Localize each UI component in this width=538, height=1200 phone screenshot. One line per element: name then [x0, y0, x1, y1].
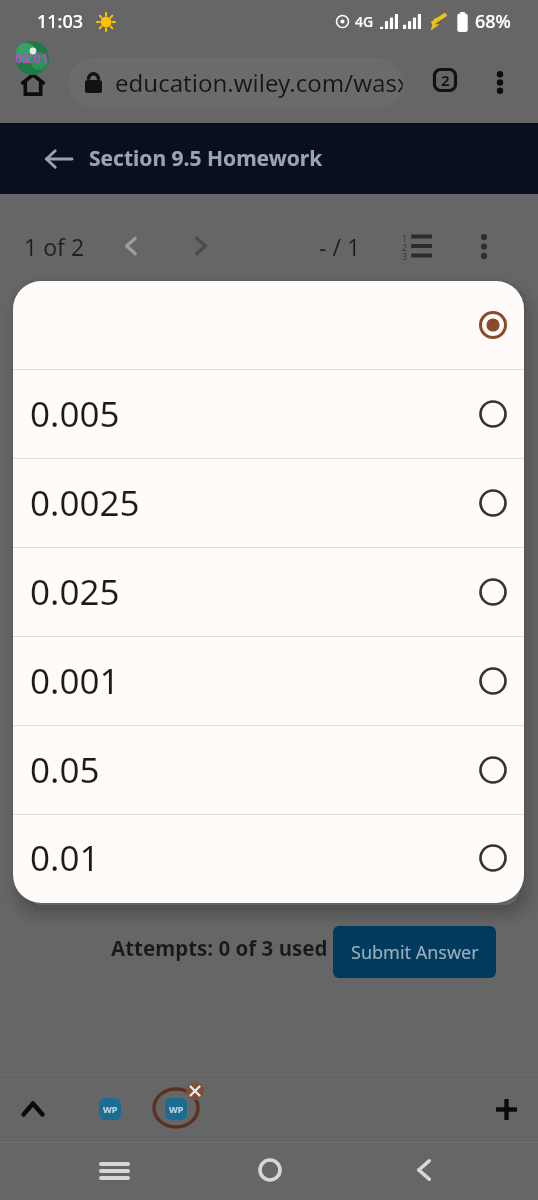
staticText: Attempts: 0 of 3 used [111, 934, 328, 962]
staticText: 0.005 [30, 390, 120, 438]
button[interactable]: Tabs [427, 62, 463, 98]
staticText: 0.05 [30, 746, 100, 794]
staticText: - / 1 [319, 231, 361, 262]
button[interactable]: Previous [109, 224, 153, 268]
staticText: 02:01 [15, 49, 49, 67]
button[interactable]: Next [179, 224, 223, 268]
staticText: education.wiley.com/wasx [115, 66, 403, 99]
staticText: Submit Answer [351, 940, 479, 965]
button[interactable]: Close tab [186, 1082, 204, 1100]
button[interactable]: Home [18, 72, 48, 102]
button[interactable] [13, 281, 524, 369]
button[interactable]: More options [480, 62, 520, 102]
button[interactable]: Back [44, 145, 72, 173]
button[interactable]: WileyPLUS tab [99, 1098, 121, 1120]
button[interactable]: 0.0025 [13, 459, 524, 547]
staticText: 0.01 [30, 834, 100, 882]
button[interactable]: More [464, 226, 504, 266]
staticText: 0.0025 [30, 479, 140, 527]
staticText: 68% [475, 9, 511, 34]
button[interactable]: Active tab [165, 1098, 187, 1120]
button[interactable]: 0.025 [13, 548, 524, 636]
button[interactable]: 0.001 [13, 637, 524, 725]
button[interactable]: Expand toolbar [10, 1086, 55, 1131]
staticText: 0.001 [30, 657, 120, 705]
button[interactable]: New tab [484, 1087, 528, 1131]
staticText: 3 [402, 250, 408, 262]
staticText: 0.025 [30, 568, 120, 616]
button[interactable]: Submit Answer [333, 926, 496, 978]
button[interactable]: 0.05 [13, 726, 524, 814]
button[interactable]: 0.005 [13, 370, 524, 458]
staticText: 2 [441, 70, 450, 90]
button[interactable]: Home [247, 1147, 292, 1192]
button[interactable]: Back [401, 1147, 446, 1192]
button[interactable]: 0.01 [13, 815, 524, 901]
staticText: WP [103, 1103, 118, 1115]
staticText: 4G [355, 12, 374, 31]
staticText: 1 of 2 [24, 231, 85, 262]
staticText: Section 9.5 Homework [89, 144, 323, 173]
staticText: WP [169, 1103, 184, 1115]
staticText: 1 [402, 232, 408, 244]
button[interactable]: Question list [400, 226, 432, 266]
staticText: 11:03 [37, 9, 84, 34]
button[interactable]: Recents [92, 1148, 137, 1193]
staticText: 2 [402, 241, 408, 253]
button[interactable]: education.wiley.com/wasx [68, 58, 403, 107]
